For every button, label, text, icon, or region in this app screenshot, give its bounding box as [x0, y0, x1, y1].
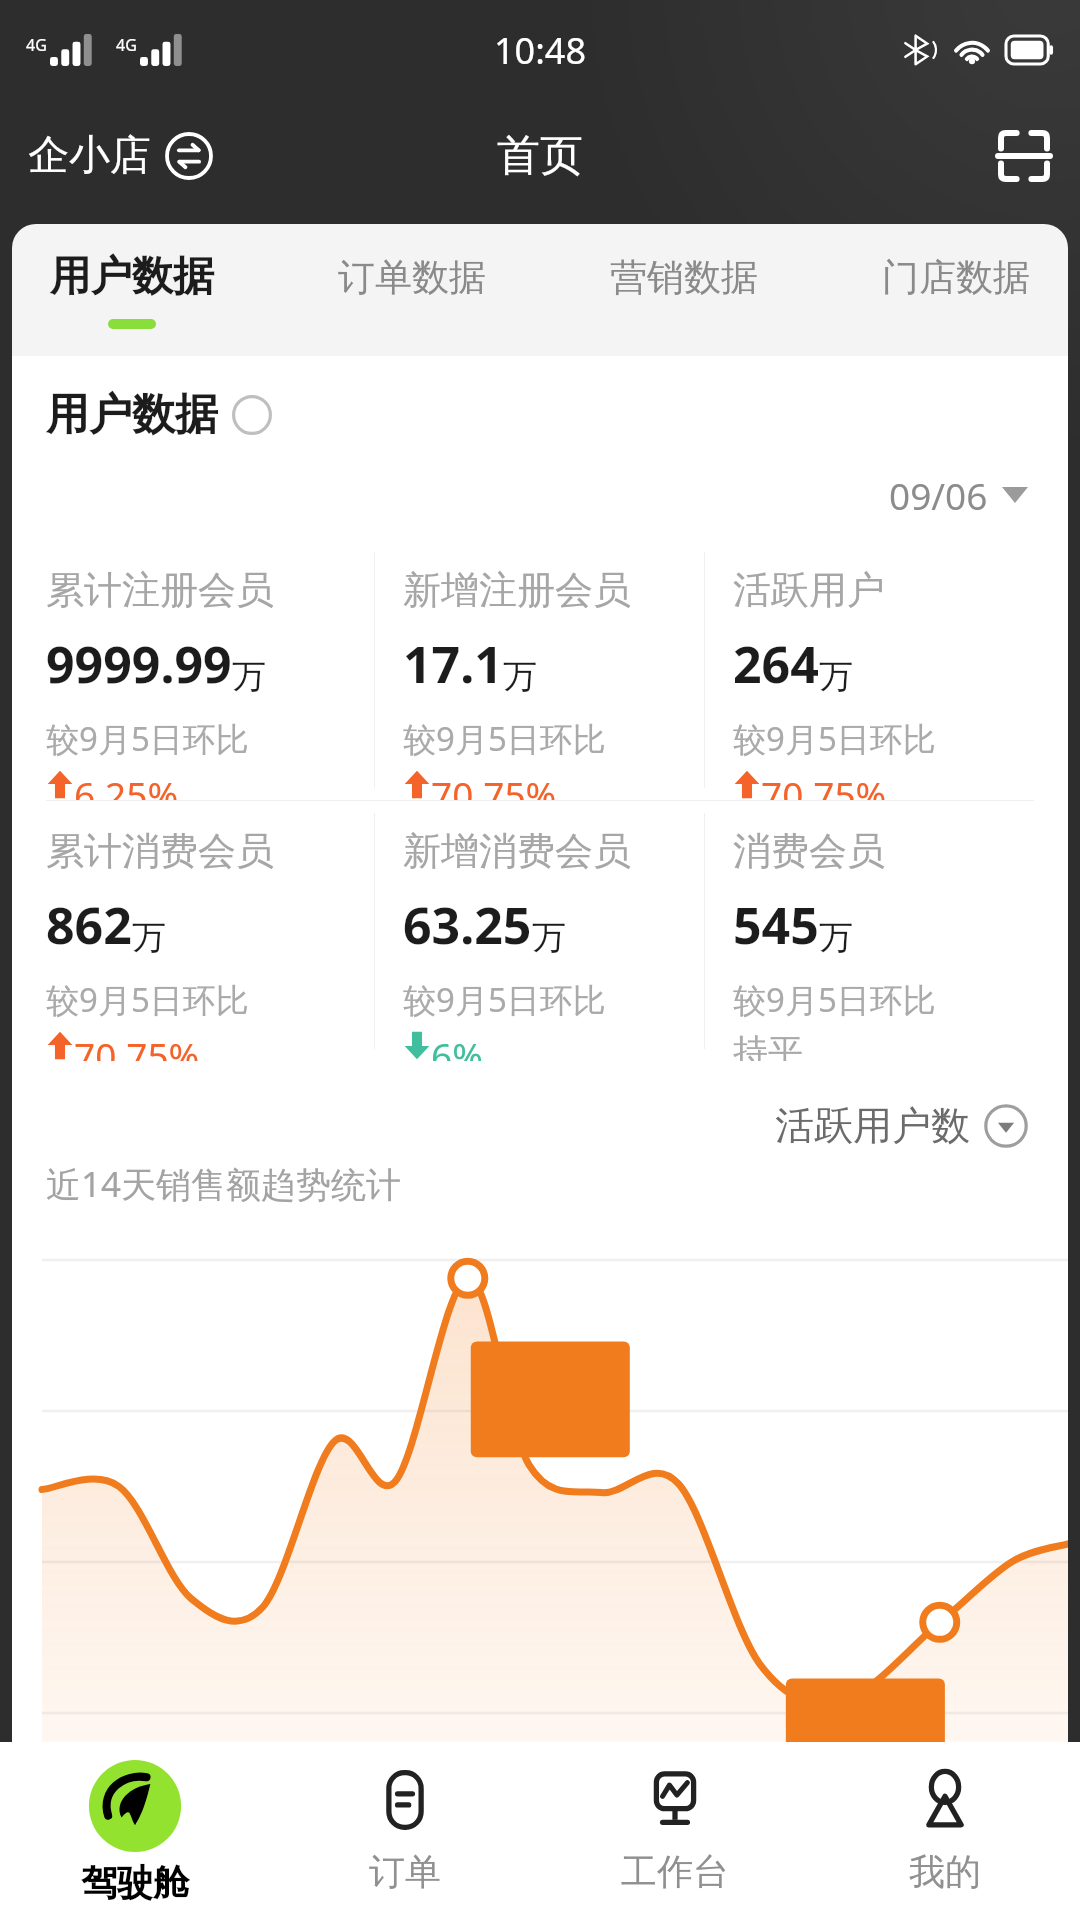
staticText: 4G	[26, 34, 47, 56]
button[interactable]: 活跃用户数	[769, 1095, 1034, 1156]
staticText: 订单数据	[338, 254, 486, 301]
staticText: 活跃用户	[733, 566, 885, 614]
staticText: 6.25%	[74, 769, 179, 800]
staticText: 10:48	[494, 26, 587, 75]
staticText: 门店数据	[882, 254, 1030, 301]
staticText: 较9月5日环比	[46, 977, 249, 1022]
staticText: 4G	[116, 34, 137, 56]
button[interactable]: 我的	[810, 1742, 1080, 1920]
staticText: 新增消费会员	[403, 827, 631, 875]
staticText: 万	[503, 655, 537, 698]
staticText: 较9月5日环比	[733, 977, 936, 1022]
staticText: 较9月5日环比	[403, 716, 606, 761]
staticText: 工作台	[621, 1849, 729, 1894]
button[interactable]: 订单	[270, 1742, 540, 1920]
button[interactable]: 新增注册会员	[375, 540, 704, 800]
button[interactable]: 累计注册会员	[46, 540, 374, 800]
button[interactable]: 用户数据	[46, 388, 272, 442]
staticText: 累计注册会员	[46, 566, 274, 614]
staticText: 活跃用户数	[775, 1101, 970, 1150]
staticText: 万	[532, 916, 566, 959]
staticText: 545	[733, 891, 819, 959]
staticText: 万	[132, 916, 166, 959]
button[interactable]: 订单数据	[330, 224, 494, 356]
staticText: 企小店	[28, 130, 151, 182]
button[interactable]: 新增消费会员	[375, 801, 704, 1061]
staticText: 较9月5日环比	[46, 716, 249, 761]
button[interactable]: 工作台	[540, 1742, 810, 1920]
staticText: 新增注册会员	[403, 566, 631, 614]
button[interactable]: 营销数据	[602, 224, 766, 356]
staticText: 9999.99	[46, 630, 232, 698]
staticText: 我的	[909, 1849, 981, 1894]
staticText: 近14天销售额趋势统计	[46, 1160, 402, 1208]
staticText: 70.75%	[431, 769, 557, 800]
staticText: 09/06	[889, 470, 988, 520]
staticText: 264	[733, 630, 819, 698]
button[interactable]: 活跃用户	[705, 540, 1034, 800]
staticText: 万	[819, 916, 853, 959]
button[interactable]: 企小店	[22, 124, 219, 188]
staticText: 万	[819, 655, 853, 698]
button[interactable]: 累计消费会员	[46, 801, 374, 1061]
button[interactable]: 门店数据	[874, 224, 1038, 356]
staticText: 营销数据	[610, 254, 758, 301]
button[interactable]: 用户数据	[42, 224, 222, 356]
staticText: 较9月5日环比	[733, 716, 936, 761]
staticText: 862	[46, 891, 132, 959]
button[interactable]: 09/06	[883, 464, 1034, 526]
staticText: 驾驶舱	[81, 1860, 189, 1905]
staticText: 订单	[369, 1849, 441, 1894]
staticText: 用户数据	[46, 388, 218, 442]
staticText: 累计消费会员	[46, 827, 274, 875]
staticText: 用户数据	[50, 251, 214, 303]
staticText: 万	[232, 655, 266, 698]
staticText: 持平	[733, 1030, 803, 1061]
staticText: 17.1	[403, 630, 503, 698]
staticText: 6%	[431, 1030, 483, 1061]
staticText: 消费会员	[733, 827, 885, 875]
button[interactable]: 驾驶舱	[0, 1742, 270, 1920]
staticText: 70.75%	[74, 1030, 200, 1061]
button[interactable]: 扫一扫	[988, 120, 1060, 192]
staticText: 较9月5日环比	[403, 977, 606, 1022]
staticText: 63.25	[403, 891, 532, 959]
staticText: 70.75%	[761, 769, 887, 800]
staticText: 首页	[497, 129, 583, 183]
button[interactable]: 消费会员	[705, 801, 1034, 1061]
